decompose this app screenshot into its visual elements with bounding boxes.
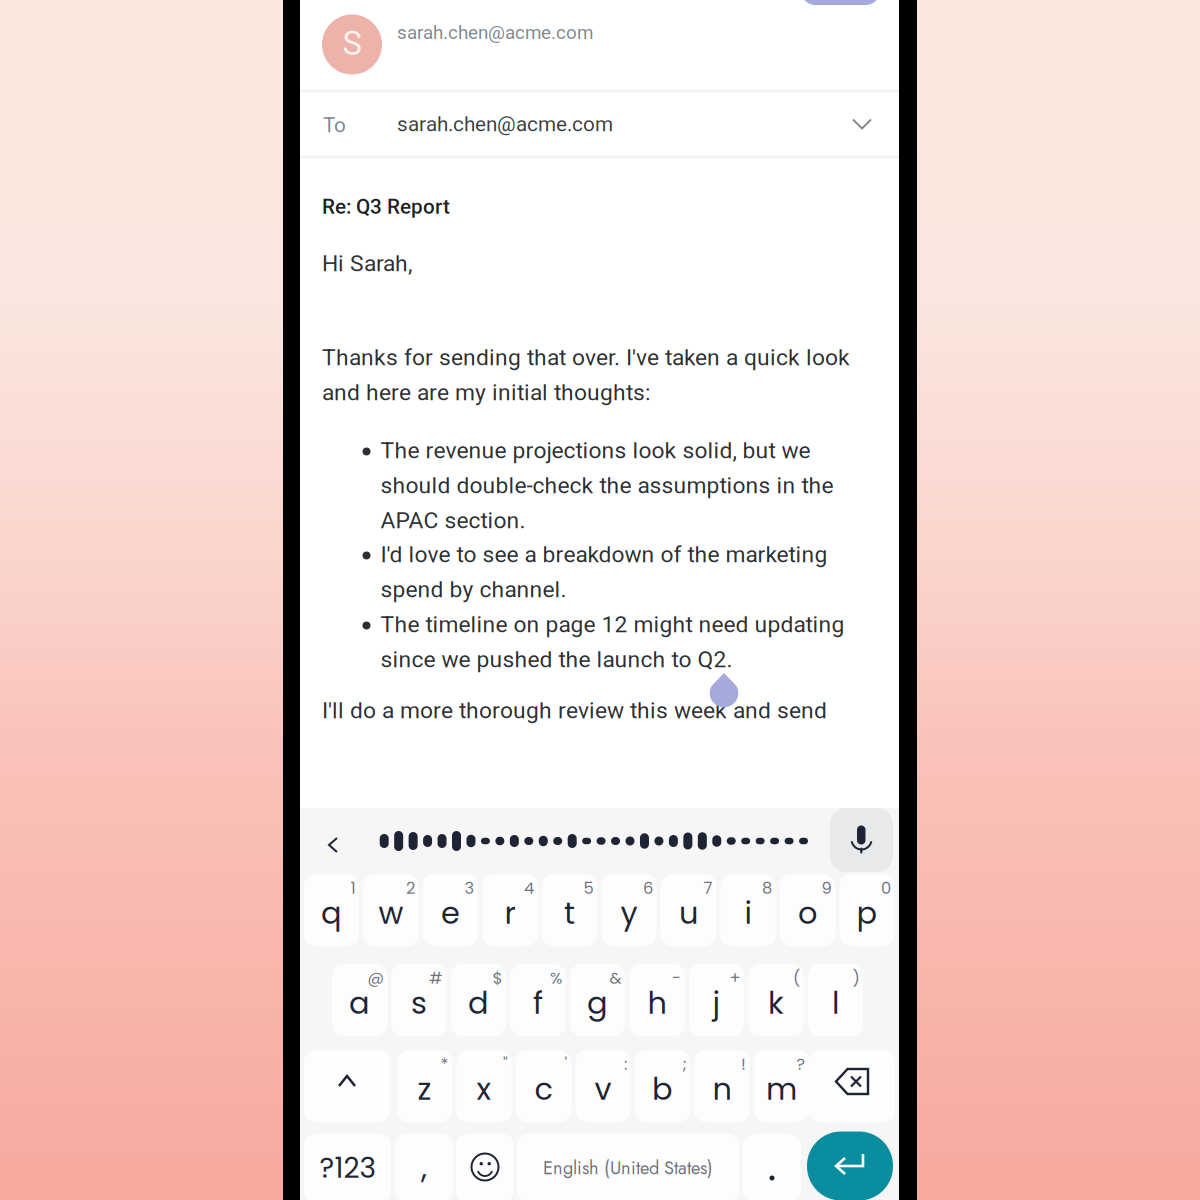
staticText: n xyxy=(712,1068,731,1110)
button[interactable]: - xyxy=(629,964,684,1036)
staticText: k xyxy=(768,982,784,1024)
staticText: % xyxy=(550,967,562,989)
staticText: o xyxy=(798,892,817,934)
staticText: 1 xyxy=(350,877,355,899)
staticText: h xyxy=(647,982,666,1024)
staticText: Re: Q3 Report xyxy=(322,194,450,219)
button[interactable]: 2 xyxy=(363,874,418,946)
button[interactable]: Voice input xyxy=(830,808,893,872)
button[interactable]: Period xyxy=(743,1134,801,1200)
staticText: g xyxy=(587,982,608,1024)
staticText: Hi Sarah, xyxy=(322,250,412,277)
button[interactable]: Symbols xyxy=(304,1134,391,1200)
staticText: , xyxy=(421,1146,427,1189)
button[interactable]: Back xyxy=(317,826,349,864)
staticText: b xyxy=(652,1068,673,1110)
staticText: sarah.chen@acme.com xyxy=(397,21,593,43)
button[interactable]: Send xyxy=(800,0,880,5)
staticText: j xyxy=(712,982,720,1024)
button[interactable]: 5 xyxy=(542,874,597,946)
staticText: 3 xyxy=(464,877,474,899)
staticText: 2 xyxy=(406,877,415,899)
staticText: q xyxy=(321,892,342,934)
staticText: i xyxy=(744,892,751,934)
staticText: $ xyxy=(492,967,502,989)
staticText: ?123 xyxy=(319,1148,375,1188)
button[interactable]: 4 xyxy=(482,874,537,946)
staticText: Thanks for sending that over. I've taken… xyxy=(322,344,850,371)
button[interactable]: ' xyxy=(516,1050,571,1122)
staticText: @ xyxy=(367,967,383,989)
button[interactable]: 7 xyxy=(661,874,716,946)
staticText: + xyxy=(729,967,740,989)
button[interactable]: Shift xyxy=(304,1050,390,1122)
staticText: a xyxy=(349,982,370,1024)
staticText: 4 xyxy=(524,877,534,899)
staticText: & xyxy=(609,967,621,989)
staticText: The revenue projections look solid, but … xyxy=(380,437,810,464)
button[interactable]: 0 xyxy=(839,874,894,946)
staticText: w xyxy=(378,892,403,934)
button[interactable]: ) xyxy=(808,964,863,1036)
button[interactable]: $ xyxy=(451,964,506,1036)
button[interactable]: ! xyxy=(694,1050,749,1122)
staticText: v xyxy=(594,1068,611,1110)
staticText: ' xyxy=(564,1053,567,1075)
staticText: APAC section. xyxy=(380,507,525,534)
staticText: - xyxy=(672,967,681,989)
button[interactable]: ; xyxy=(635,1050,690,1122)
button[interactable]: 9 xyxy=(780,874,835,946)
button[interactable]: Emoji xyxy=(456,1134,514,1200)
staticText: e xyxy=(441,892,460,934)
staticText: since we pushed the launch to Q2. xyxy=(380,646,732,673)
button[interactable]: # xyxy=(391,964,446,1036)
staticText: ) xyxy=(852,967,859,989)
staticText: 6 xyxy=(643,877,653,899)
button[interactable]: 3 xyxy=(423,874,478,946)
staticText: 5 xyxy=(583,877,593,899)
staticText: t xyxy=(564,892,575,934)
button[interactable]: 6 xyxy=(601,874,656,946)
button[interactable]: Expand recipients xyxy=(853,119,871,128)
staticText: ! xyxy=(741,1053,746,1075)
button[interactable]: Space xyxy=(517,1134,739,1200)
button[interactable]: ? xyxy=(754,1050,809,1122)
button[interactable]: : xyxy=(575,1050,630,1122)
button[interactable]: + xyxy=(689,964,744,1036)
staticText: r xyxy=(504,892,515,934)
button[interactable]: & xyxy=(570,964,625,1036)
staticText: should double-check the assumptions in t… xyxy=(380,472,833,499)
button[interactable]: Backspace xyxy=(809,1050,895,1122)
staticText: * xyxy=(440,1053,448,1075)
staticText: ( xyxy=(793,967,800,989)
button[interactable]: " xyxy=(456,1050,511,1122)
button[interactable]: Comma xyxy=(395,1134,453,1200)
button[interactable]: Enter xyxy=(807,1131,893,1200)
staticText: y xyxy=(620,892,637,934)
staticText: " xyxy=(503,1053,508,1075)
button[interactable]: % xyxy=(510,964,565,1036)
staticText: I'd love to see a breakdown of the marke… xyxy=(380,541,827,568)
staticText: and here are my initial thoughts: xyxy=(322,379,651,406)
button[interactable]: 1 xyxy=(304,874,359,946)
staticText: ? xyxy=(796,1053,805,1075)
staticText: To xyxy=(323,113,346,137)
button[interactable]: * xyxy=(397,1050,452,1122)
staticText: m xyxy=(766,1068,797,1110)
button[interactable]: ( xyxy=(748,964,803,1036)
staticText: l xyxy=(832,982,839,1024)
button[interactable]: 8 xyxy=(720,874,775,946)
staticText: English (United States) xyxy=(543,1155,713,1181)
staticText: I'll do a more thorough review this week… xyxy=(322,697,827,724)
staticText: # xyxy=(429,967,443,989)
staticText: c xyxy=(534,1068,552,1110)
staticText: u xyxy=(679,892,698,934)
staticText: z xyxy=(417,1068,431,1110)
staticText: sarah.chen@acme.com xyxy=(397,112,613,136)
staticText: 9 xyxy=(821,877,831,899)
staticText: The timeline on page 12 might need updat… xyxy=(380,611,844,638)
staticText: : xyxy=(624,1053,627,1075)
button[interactable]: @ xyxy=(332,964,387,1036)
staticText: 0 xyxy=(881,877,891,899)
staticText: spend by channel. xyxy=(380,576,566,603)
